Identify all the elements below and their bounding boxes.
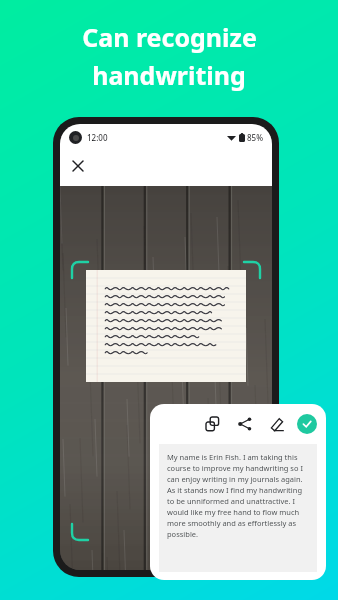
button[interactable]: Share (235, 414, 255, 434)
staticText: My name is Erin Fish. I am taking this c… (167, 452, 309, 539)
staticText: 85% (247, 132, 263, 143)
staticText: handwriting (92, 58, 246, 92)
button[interactable]: Copy (203, 414, 223, 434)
staticText: Can recognize (82, 20, 257, 54)
button[interactable]: Edit (267, 414, 287, 434)
button[interactable]: Done (297, 414, 317, 434)
button[interactable]: Close (66, 154, 90, 178)
staticText: 12:00 (87, 132, 108, 143)
